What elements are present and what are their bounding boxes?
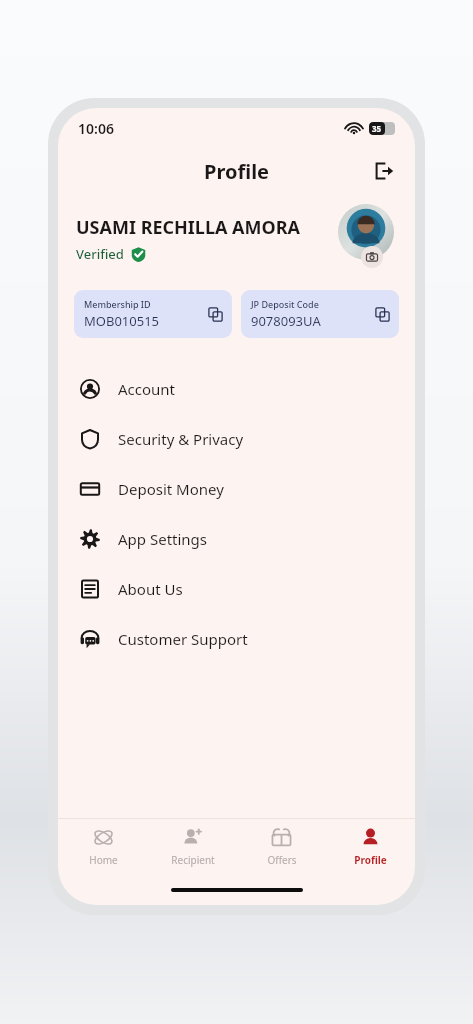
button[interactable]: Offers [237,819,326,875]
button[interactable]: Profile photo [338,204,394,260]
staticText: JP Deposit Code [251,298,319,310]
staticText: 35 [372,123,382,134]
staticText: About Us [118,579,183,599]
button[interactable]: Account [58,364,415,414]
button[interactable]: Home [58,819,148,875]
staticText: Offers [267,853,297,867]
button[interactable]: JP Deposit Code [241,290,399,338]
staticText: Recipient [171,853,215,867]
button[interactable]: About Us [58,564,415,614]
staticText: MOB010515 [84,312,160,330]
staticText: Deposit Money [118,479,224,499]
staticText: Membership ID [84,298,151,310]
button[interactable]: Recipient [148,819,237,875]
staticText: Customer Support [118,629,248,649]
staticText: 10:06 [78,119,114,138]
staticText: Profile [204,158,270,185]
button[interactable]: Log out [367,154,401,188]
staticText: Home [89,853,118,867]
staticText: 9078093UA [251,312,321,330]
staticText: Account [118,379,176,399]
staticText: Verified [76,245,124,263]
button[interactable]: Membership ID [74,290,232,338]
staticText: USAMI RECHILLA AMORA [76,215,301,240]
staticText: Profile [354,853,387,867]
button[interactable]: Security & Privacy [58,414,415,464]
button[interactable]: Customer Support [58,614,415,664]
button[interactable]: Deposit Money [58,464,415,514]
button[interactable]: Change photo [361,246,383,268]
button[interactable]: App Settings [58,514,415,564]
button[interactable]: Profile [326,819,415,875]
staticText: Security & Privacy [118,429,244,449]
staticText: App Settings [118,529,208,549]
